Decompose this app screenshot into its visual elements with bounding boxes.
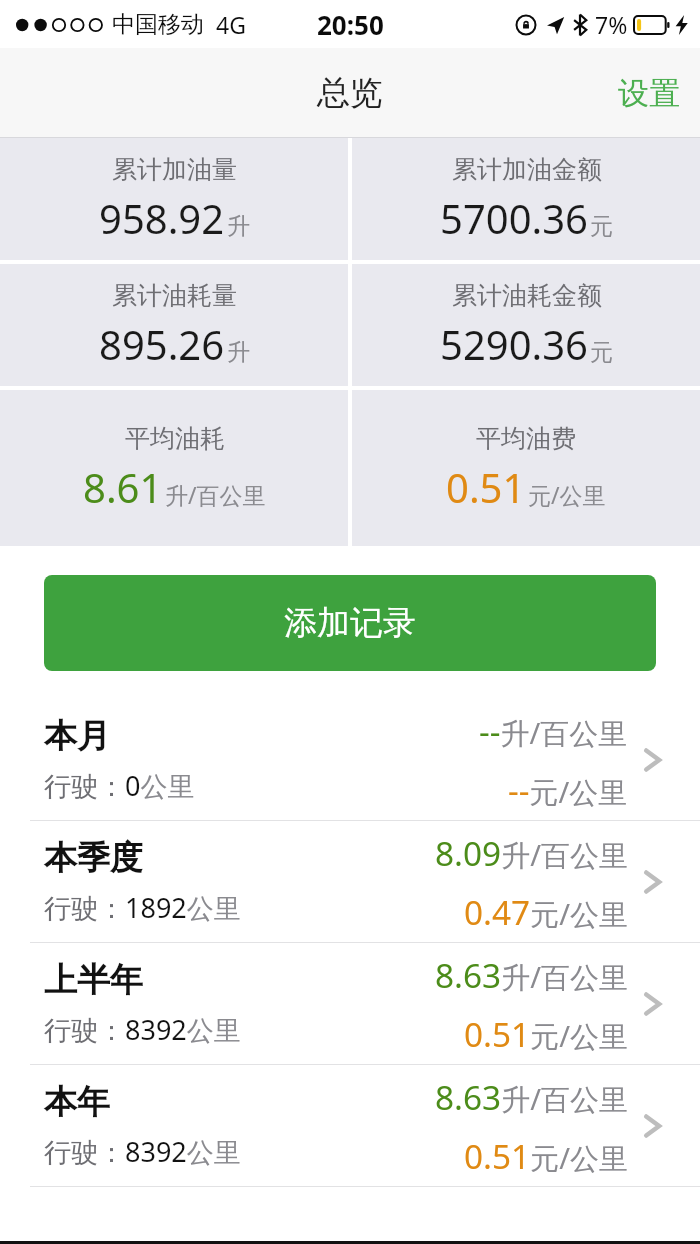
staticText: 本年: [44, 1081, 110, 1123]
button[interactable]: 添加记录: [44, 575, 656, 671]
staticText: 升: [227, 338, 250, 367]
staticText: 行驶：8392公里: [44, 1011, 241, 1048]
staticText: 平均油耗: [125, 423, 225, 454]
staticText: 累计油耗金额: [452, 280, 602, 311]
staticText: 设置: [618, 74, 680, 113]
staticText: --元/公里: [508, 767, 628, 812]
staticText: 总览: [317, 72, 383, 114]
button[interactable]: 本季度: [0, 821, 700, 942]
staticText: 8.61: [83, 460, 163, 514]
staticText: 20:50: [317, 7, 384, 42]
other: 查看详情: [636, 743, 670, 777]
staticText: 累计油耗量: [112, 280, 237, 311]
staticText: 添加记录: [284, 602, 416, 644]
staticText: 升: [227, 212, 250, 241]
staticText: 5290.36: [440, 317, 588, 371]
staticText: 958.92: [99, 191, 225, 245]
button[interactable]: 本年: [0, 1065, 700, 1186]
staticText: 895.26: [99, 317, 225, 371]
staticText: 本月: [44, 715, 110, 757]
other: 查看详情: [636, 1109, 670, 1143]
staticText: 平均油费: [476, 423, 576, 454]
staticText: 累计加油金额: [452, 154, 602, 185]
staticText: 行驶：8392公里: [44, 1133, 241, 1170]
staticText: 本季度: [44, 837, 143, 879]
staticText: 8.63升/百公里: [435, 1074, 628, 1119]
other: 查看详情: [636, 987, 670, 1021]
staticText: 4G: [216, 9, 246, 40]
staticText: 上半年: [44, 959, 143, 1001]
button[interactable]: 本月: [0, 699, 700, 820]
button[interactable]: 上半年: [0, 943, 700, 1064]
staticText: 0.51元/公里: [464, 1133, 628, 1178]
staticText: 累计加油量: [112, 154, 237, 185]
staticText: --升/百公里: [479, 708, 628, 753]
staticText: 0.51: [446, 460, 526, 514]
staticText: 中国移动: [112, 10, 204, 39]
button[interactable]: 设置: [598, 60, 700, 127]
staticText: 元/公里: [528, 479, 606, 510]
other: 查看详情: [636, 865, 670, 899]
staticText: 5700.36: [440, 191, 588, 245]
staticText: 元: [590, 338, 613, 367]
staticText: 8.09升/百公里: [435, 830, 628, 875]
staticText: 升/百公里: [165, 479, 266, 510]
staticText: 7%: [595, 9, 628, 40]
staticText: 8.63升/百公里: [435, 952, 628, 997]
staticText: 元: [590, 212, 613, 241]
staticText: 行驶：0公里: [44, 767, 195, 804]
staticText: 行驶：1892公里: [44, 889, 241, 926]
staticText: 0.47元/公里: [464, 889, 628, 934]
staticText: 0.51元/公里: [464, 1011, 628, 1056]
